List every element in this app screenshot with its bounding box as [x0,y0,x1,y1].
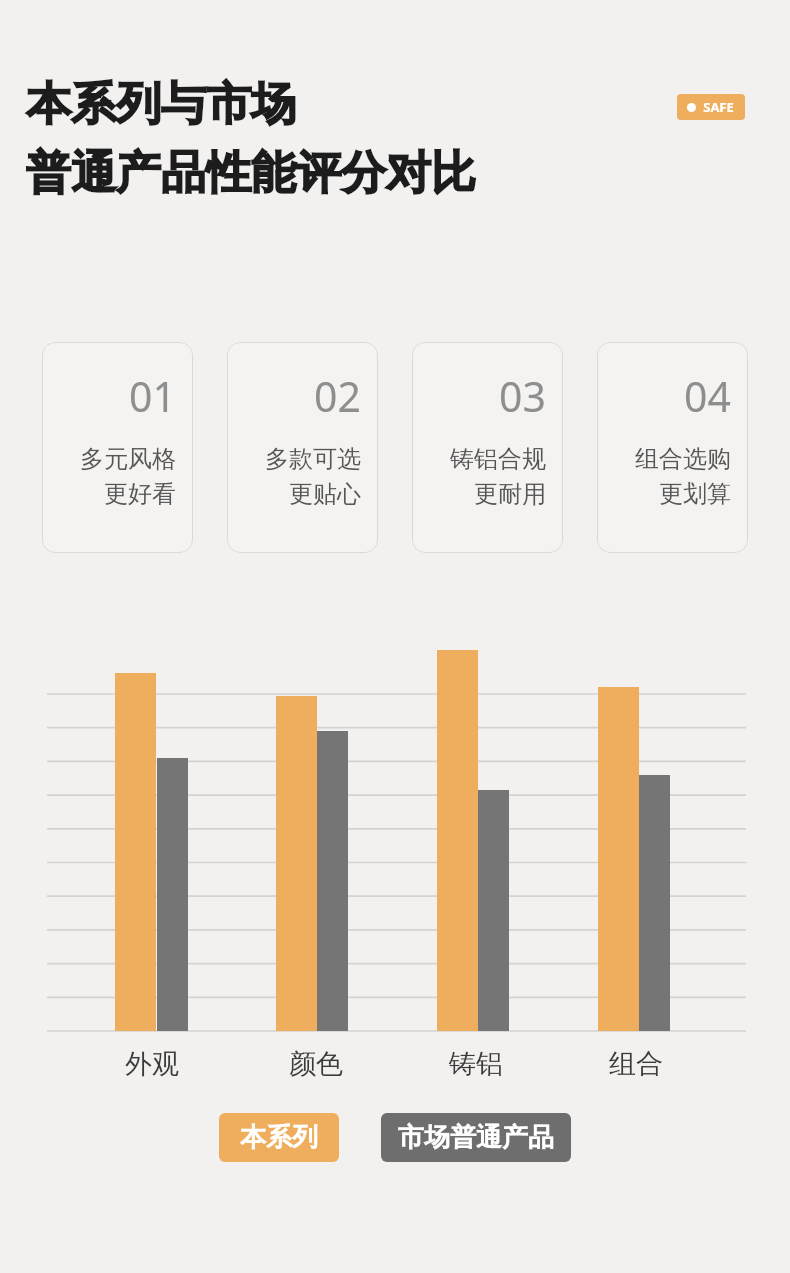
staticText: 组合 [609,1047,663,1081]
staticText: 铸铝 [449,1047,503,1081]
staticText: 03 [499,368,546,424]
staticText: 04 [684,368,731,424]
staticText: 本系列 [240,1121,318,1154]
staticText: 铸铝合规 [450,444,546,474]
button[interactable]: 04 [597,342,748,553]
staticText: 多元风格 [80,444,176,474]
staticText: 市场普通产品 [398,1121,554,1154]
staticText: SAFE [703,98,734,116]
staticText: 更好看 [104,479,176,509]
staticText: 本系列与市场 [26,76,296,133]
button[interactable]: 市场普通产品 [381,1113,571,1162]
staticText: 普通产品性能评分对比 [26,145,476,202]
staticText: 更耐用 [474,479,546,509]
staticText: 更划算 [659,479,731,509]
button[interactable]: 本系列 [219,1113,339,1162]
button[interactable]: Safe certified [677,94,745,120]
staticText: 组合选购 [635,444,731,474]
staticText: 01 [129,368,176,424]
button[interactable]: 01 [42,342,193,553]
staticText: 颜色 [289,1047,343,1081]
button[interactable]: 03 [412,342,563,553]
staticText: 02 [314,368,361,424]
button[interactable]: 02 [227,342,378,553]
staticText: 更贴心 [289,479,361,509]
staticText: 多款可选 [265,444,361,474]
staticText: 外观 [125,1047,179,1081]
